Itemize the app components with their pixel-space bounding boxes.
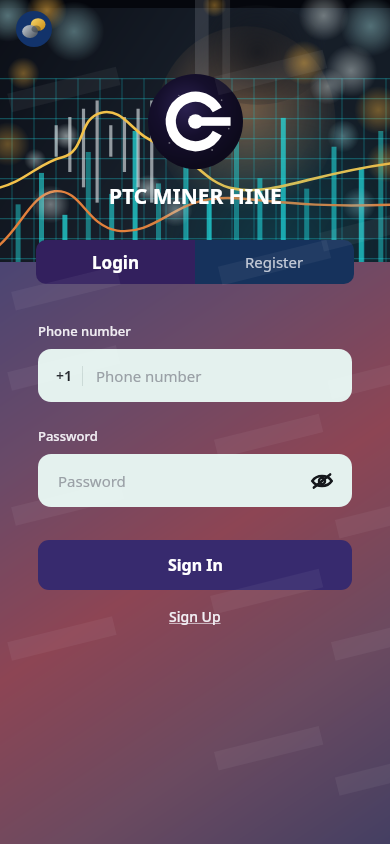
staticText: +1 (56, 366, 73, 385)
staticText: Password (58, 471, 126, 491)
button[interactable]: Password (38, 454, 352, 507)
button[interactable]: +1 (38, 349, 352, 402)
button[interactable]: Sign In (38, 540, 352, 590)
staticText: Sign Up (169, 607, 221, 626)
staticText: Password (38, 427, 98, 445)
staticText: Sign In (168, 554, 223, 576)
button[interactable]: Register (195, 240, 354, 284)
staticText: Login (92, 251, 140, 274)
button[interactable]: Login (36, 240, 195, 284)
staticText: Register (245, 252, 304, 272)
staticText: Phone number (96, 366, 202, 386)
staticText: PTC MINER HINE (109, 182, 282, 211)
button[interactable]: Sign Up (161, 604, 229, 629)
button[interactable]: App badge (16, 11, 52, 47)
staticText: Phone number (38, 322, 131, 340)
button[interactable]: Show password (302, 461, 342, 501)
